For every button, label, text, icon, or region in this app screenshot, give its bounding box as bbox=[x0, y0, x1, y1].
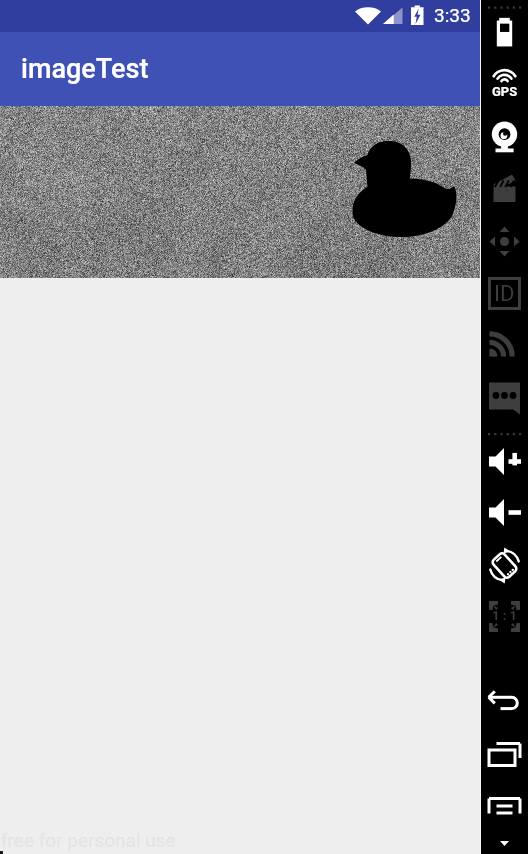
button[interactable]: Cellular bbox=[481, 329, 528, 362]
staticText: 3:33 bbox=[434, 4, 471, 26]
button[interactable]: Webcam bbox=[481, 120, 528, 153]
button[interactable]: Rotate bbox=[481, 549, 528, 582]
button[interactable]: D-pad bbox=[481, 225, 528, 258]
staticText: ID bbox=[494, 281, 515, 307]
button[interactable]: Volume down bbox=[481, 496, 528, 529]
button[interactable]: Menu bbox=[481, 789, 528, 822]
button[interactable]: Volume up bbox=[481, 445, 528, 478]
button[interactable]: Record screen bbox=[481, 172, 528, 205]
button[interactable]: Phone identity bbox=[481, 277, 528, 310]
staticText: GPS bbox=[492, 84, 518, 99]
staticText: imageTest bbox=[21, 53, 149, 85]
button[interactable]: imageTest bbox=[0, 32, 480, 106]
button[interactable]: Zoom to actual size bbox=[481, 600, 528, 633]
button[interactable]: More bbox=[481, 833, 528, 853]
button[interactable]: Rubber duck photo bbox=[0, 106, 480, 278]
staticText: free for personal use bbox=[1, 829, 176, 851]
button[interactable]: Messages bbox=[481, 381, 528, 414]
button[interactable]: GPS location bbox=[481, 61, 528, 94]
button[interactable]: Back bbox=[481, 684, 528, 717]
button[interactable]: Battery bbox=[481, 17, 528, 50]
staticText: 1 : 1 bbox=[492, 608, 518, 623]
button[interactable]: Overview bbox=[481, 736, 528, 769]
